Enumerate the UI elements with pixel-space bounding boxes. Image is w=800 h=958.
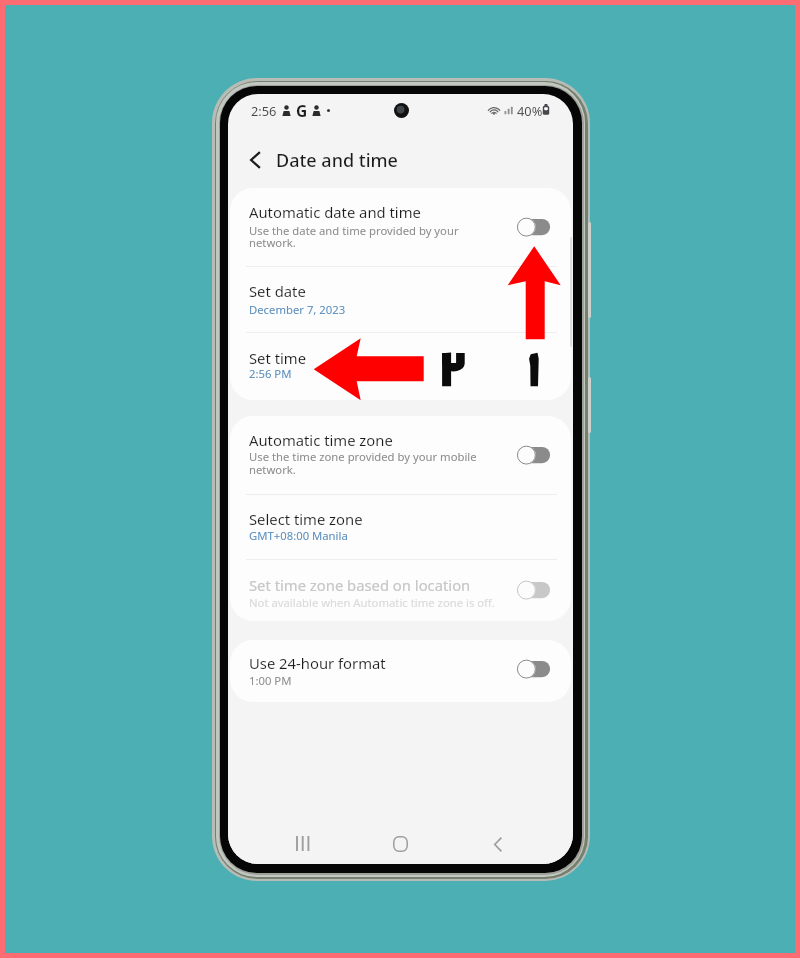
- button[interactable]: Recent apps: [284, 825, 320, 861]
- staticText: Select time zone: [249, 509, 363, 529]
- button[interactable]: Switch, off: [515, 444, 553, 466]
- staticText: Automatic date and time: [249, 202, 421, 222]
- button[interactable]: Switch, off: [515, 216, 553, 238]
- staticText: 40%: [517, 102, 543, 119]
- button[interactable]: [230, 332, 571, 400]
- button[interactable]: Switch, off: [515, 658, 553, 680]
- button[interactable]: [230, 416, 571, 493]
- staticText: 2:56: [251, 102, 277, 119]
- staticText: network.: [249, 462, 296, 477]
- button[interactable]: [230, 559, 571, 621]
- staticText: G: [296, 100, 308, 121]
- staticText: 2:56 PM: [249, 366, 292, 381]
- button[interactable]: Back: [480, 826, 516, 862]
- staticText: Use the time zone provided by your mobil…: [249, 449, 477, 464]
- button[interactable]: Home: [382, 826, 418, 862]
- staticText: network.: [249, 235, 296, 250]
- staticText: December 7, 2023: [249, 302, 346, 317]
- button[interactable]: [230, 266, 571, 332]
- staticText: Set date: [249, 281, 306, 301]
- staticText: Set time zone based on location: [249, 575, 471, 595]
- staticText: 1:00 PM: [249, 673, 292, 688]
- button[interactable]: Navigate up: [240, 145, 270, 175]
- staticText: Date and time: [276, 148, 398, 173]
- staticText: Set time: [249, 348, 306, 368]
- staticText: Use the date and time provided by your: [249, 223, 459, 238]
- staticText: Automatic time zone: [249, 430, 393, 450]
- button[interactable]: [230, 188, 571, 266]
- button[interactable]: [230, 494, 571, 560]
- button[interactable]: Switch disabled: [515, 579, 553, 601]
- button[interactable]: [230, 640, 571, 702]
- staticText: Not available when Automatic time zone i…: [249, 595, 495, 610]
- staticText: Use 24-hour format: [249, 653, 386, 673]
- staticText: GMT+08:00 Manila: [249, 528, 348, 543]
